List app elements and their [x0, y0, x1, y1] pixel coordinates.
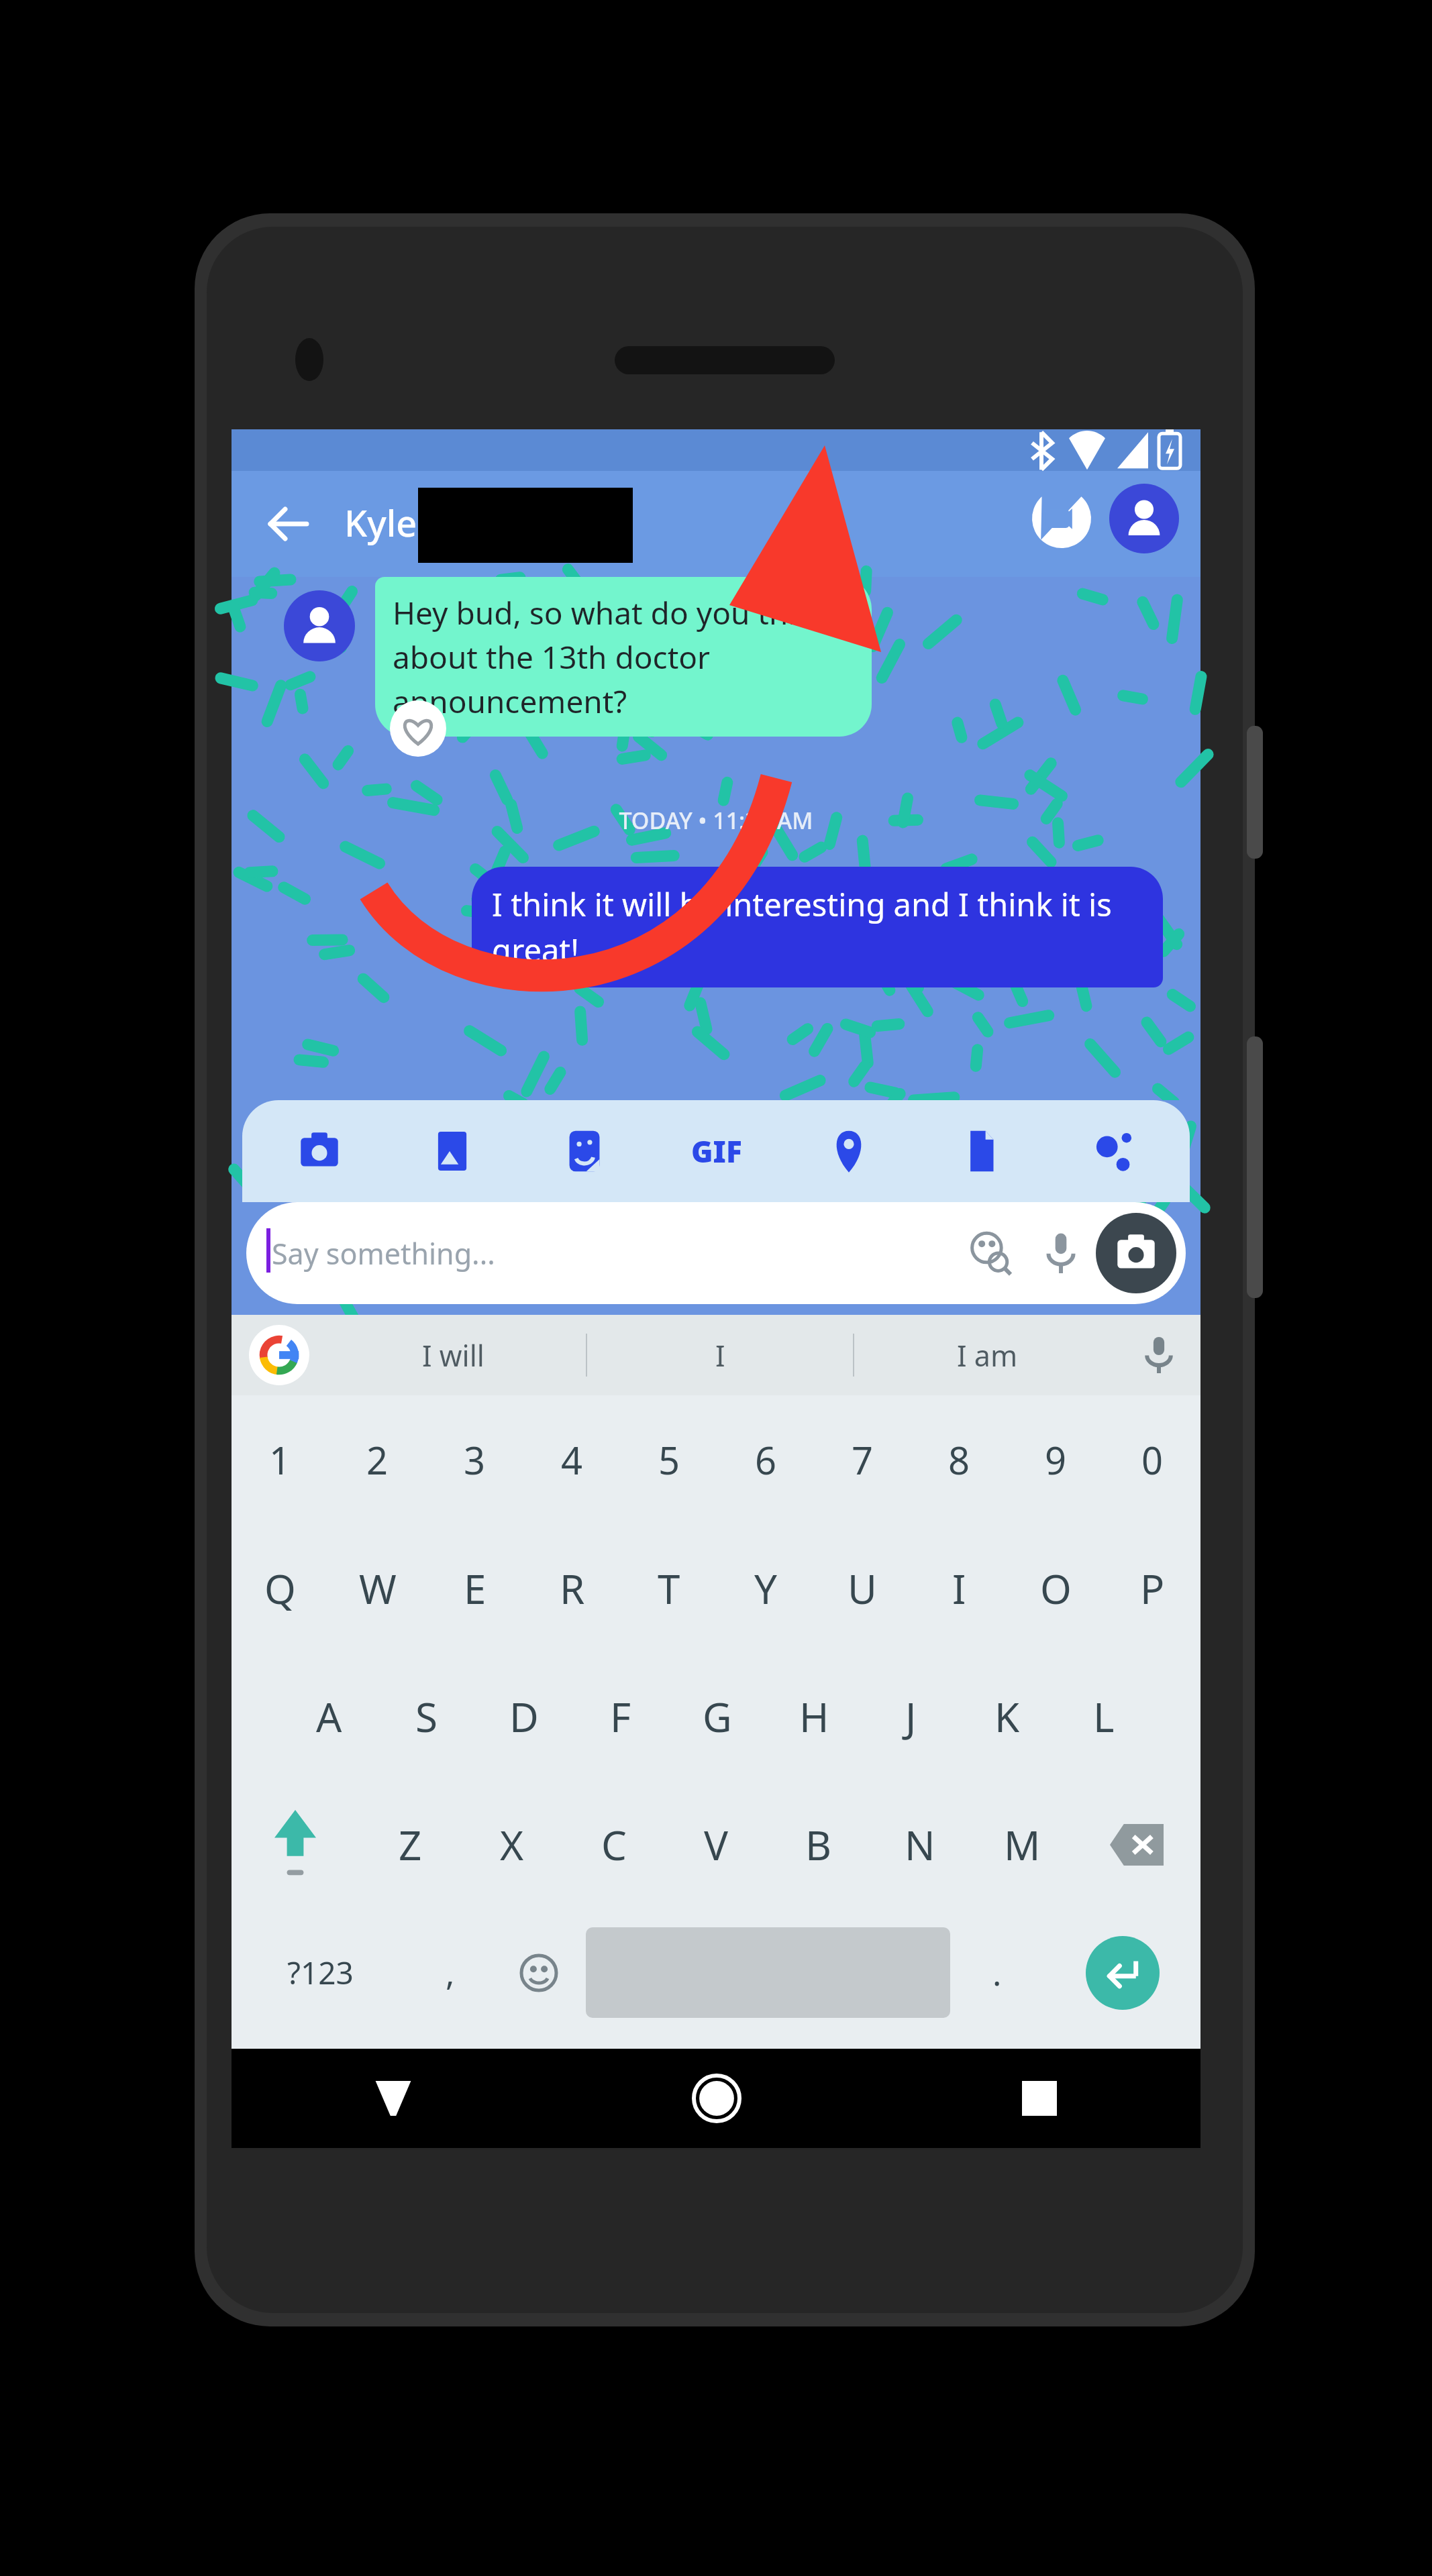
- button[interactable]: U: [814, 1524, 911, 1652]
- button[interactable]: P: [1104, 1524, 1200, 1652]
- button[interactable]: K: [959, 1652, 1056, 1780]
- staticText: A: [316, 1689, 342, 1744]
- staticText: W: [359, 1561, 397, 1616]
- button[interactable]: 2: [329, 1395, 426, 1524]
- staticText: E: [464, 1561, 487, 1616]
- button[interactable]: O: [1007, 1524, 1104, 1652]
- button[interactable]: 6: [717, 1395, 814, 1524]
- button[interactable]: 4: [523, 1395, 621, 1524]
- button[interactable]: 9: [1007, 1395, 1104, 1524]
- button[interactable]: 5: [621, 1395, 717, 1524]
- button[interactable]: I: [587, 1315, 853, 1395]
- button[interactable]: Backspace: [1073, 1780, 1200, 1909]
- button[interactable]: Stickers: [518, 1100, 650, 1202]
- button[interactable]: T: [621, 1524, 717, 1652]
- staticText: I think it will be interesting and I thi…: [492, 883, 1143, 971]
- button[interactable]: E: [426, 1524, 523, 1652]
- button[interactable]: .: [950, 1909, 1044, 2037]
- staticText: I: [715, 1336, 725, 1375]
- staticText: Z: [399, 1817, 422, 1872]
- button[interactable]: 1: [232, 1395, 329, 1524]
- staticText: Say something...: [272, 1234, 495, 1273]
- staticText: V: [704, 1817, 728, 1872]
- staticText: TODAY • 11:20 AM: [232, 805, 1200, 836]
- button[interactable]: Gallery: [386, 1100, 518, 1202]
- button[interactable]: Z: [359, 1780, 461, 1909]
- staticText: M: [1004, 1817, 1041, 1872]
- staticText: T: [658, 1561, 680, 1616]
- button[interactable]: Voice typing: [1131, 1327, 1187, 1383]
- button[interactable]: Home: [555, 2049, 878, 2148]
- button[interactable]: I think it will be interesting and I thi…: [472, 867, 1163, 987]
- staticText: 6: [755, 1434, 777, 1485]
- button[interactable]: GIF: [650, 1100, 782, 1202]
- button[interactable]: H: [766, 1652, 862, 1780]
- button[interactable]: 0: [1104, 1395, 1200, 1524]
- button[interactable]: F: [572, 1652, 669, 1780]
- button[interactable]: M: [971, 1780, 1073, 1909]
- staticText: B: [805, 1817, 831, 1872]
- staticText: GIF: [691, 1131, 742, 1171]
- button[interactable]: R: [523, 1524, 621, 1652]
- staticText: I am: [957, 1336, 1018, 1375]
- staticText: D: [509, 1689, 539, 1744]
- button[interactable]: W: [329, 1524, 426, 1652]
- button[interactable]: A: [280, 1652, 378, 1780]
- staticText: P: [1140, 1561, 1165, 1616]
- button[interactable]: Back: [252, 487, 325, 561]
- staticText: Kyle: [344, 498, 417, 547]
- button[interactable]: 8: [911, 1395, 1007, 1524]
- button[interactable]: Hey bud, so what do you think about the …: [375, 577, 872, 737]
- staticText: I will: [422, 1336, 484, 1375]
- staticText: Y: [754, 1561, 777, 1616]
- button[interactable]: V: [665, 1780, 767, 1909]
- button[interactable]: Assistant: [1047, 1100, 1179, 1202]
- button[interactable]: Google: [249, 1325, 309, 1385]
- staticText: I: [952, 1561, 966, 1616]
- button[interactable]: J: [862, 1652, 959, 1780]
- button[interactable]: N: [869, 1780, 971, 1909]
- button[interactable]: Take photo: [1096, 1213, 1176, 1293]
- staticText: R: [560, 1561, 585, 1616]
- button[interactable]: L: [1056, 1652, 1152, 1780]
- button[interactable]: Video call: [1025, 482, 1098, 555]
- button[interactable]: 7: [814, 1395, 911, 1524]
- button[interactable]: Enter: [1086, 1936, 1160, 2010]
- button[interactable]: Voice input: [1026, 1218, 1096, 1288]
- staticText: H: [799, 1689, 829, 1744]
- button[interactable]: I will: [320, 1315, 586, 1395]
- button[interactable]: Love reaction: [390, 700, 446, 757]
- button[interactable]: Y: [717, 1524, 814, 1652]
- button[interactable]: I am: [854, 1315, 1120, 1395]
- button[interactable]: ,: [409, 1909, 492, 2037]
- button[interactable]: Shift: [232, 1780, 359, 1909]
- button[interactable]: ?123: [232, 1909, 409, 2037]
- button[interactable]: Camera: [253, 1100, 386, 1202]
- button[interactable]: 3: [426, 1395, 523, 1524]
- button[interactable]: S: [378, 1652, 475, 1780]
- button[interactable]: X: [461, 1780, 563, 1909]
- button[interactable]: Location: [782, 1100, 915, 1202]
- button[interactable]: Space: [586, 1927, 950, 2018]
- button[interactable]: D: [475, 1652, 572, 1780]
- staticText: 5: [658, 1434, 680, 1485]
- button[interactable]: File: [915, 1100, 1047, 1202]
- button[interactable]: Recents: [878, 2049, 1200, 2148]
- button[interactable]: B: [767, 1780, 869, 1909]
- button[interactable]: C: [563, 1780, 665, 1909]
- button[interactable]: G: [669, 1652, 766, 1780]
- staticText: L: [1093, 1689, 1115, 1744]
- button[interactable]: Search stickers: [956, 1218, 1026, 1288]
- staticText: S: [415, 1689, 438, 1744]
- button[interactable]: Emoji: [492, 1909, 586, 2037]
- staticText: C: [601, 1817, 627, 1872]
- staticText: N: [905, 1817, 935, 1872]
- staticText: Q: [264, 1561, 296, 1616]
- staticText: 4: [561, 1434, 583, 1485]
- button[interactable]: Close keyboard: [232, 2049, 555, 2148]
- button[interactable]: Q: [232, 1524, 329, 1652]
- staticText: X: [500, 1817, 524, 1872]
- staticText: J: [905, 1689, 917, 1744]
- button[interactable]: Contact details: [1109, 484, 1179, 553]
- button[interactable]: I: [911, 1524, 1007, 1652]
